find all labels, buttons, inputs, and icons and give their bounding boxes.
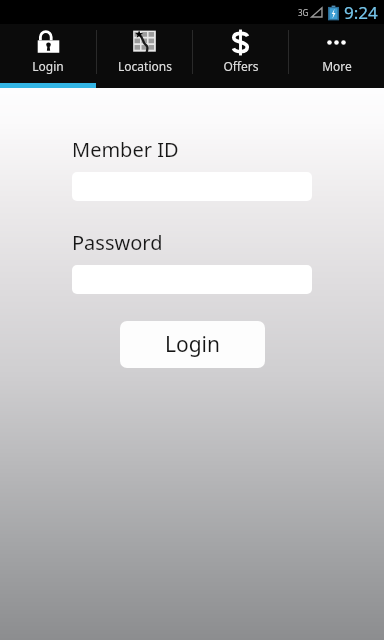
other: Login [35, 29, 62, 56]
staticText: Login [165, 330, 221, 359]
staticText: Password [72, 229, 163, 256]
staticText: Locations [118, 58, 172, 74]
staticText: Login [32, 58, 64, 74]
button[interactable]: More [289, 24, 384, 88]
other: Offers [227, 29, 254, 56]
button[interactable]: Login [0, 24, 96, 88]
button[interactable]: Login [120, 321, 265, 368]
other: Locations [131, 29, 158, 56]
staticText: Member ID [72, 136, 179, 163]
staticText: 9:24 [344, 1, 378, 24]
other: More [323, 29, 350, 56]
button[interactable]: Offers [193, 24, 288, 88]
button[interactable]: Locations [97, 24, 192, 88]
staticText: 3G [298, 7, 309, 18]
staticText: Offers [223, 58, 259, 74]
staticText: More [322, 58, 352, 74]
